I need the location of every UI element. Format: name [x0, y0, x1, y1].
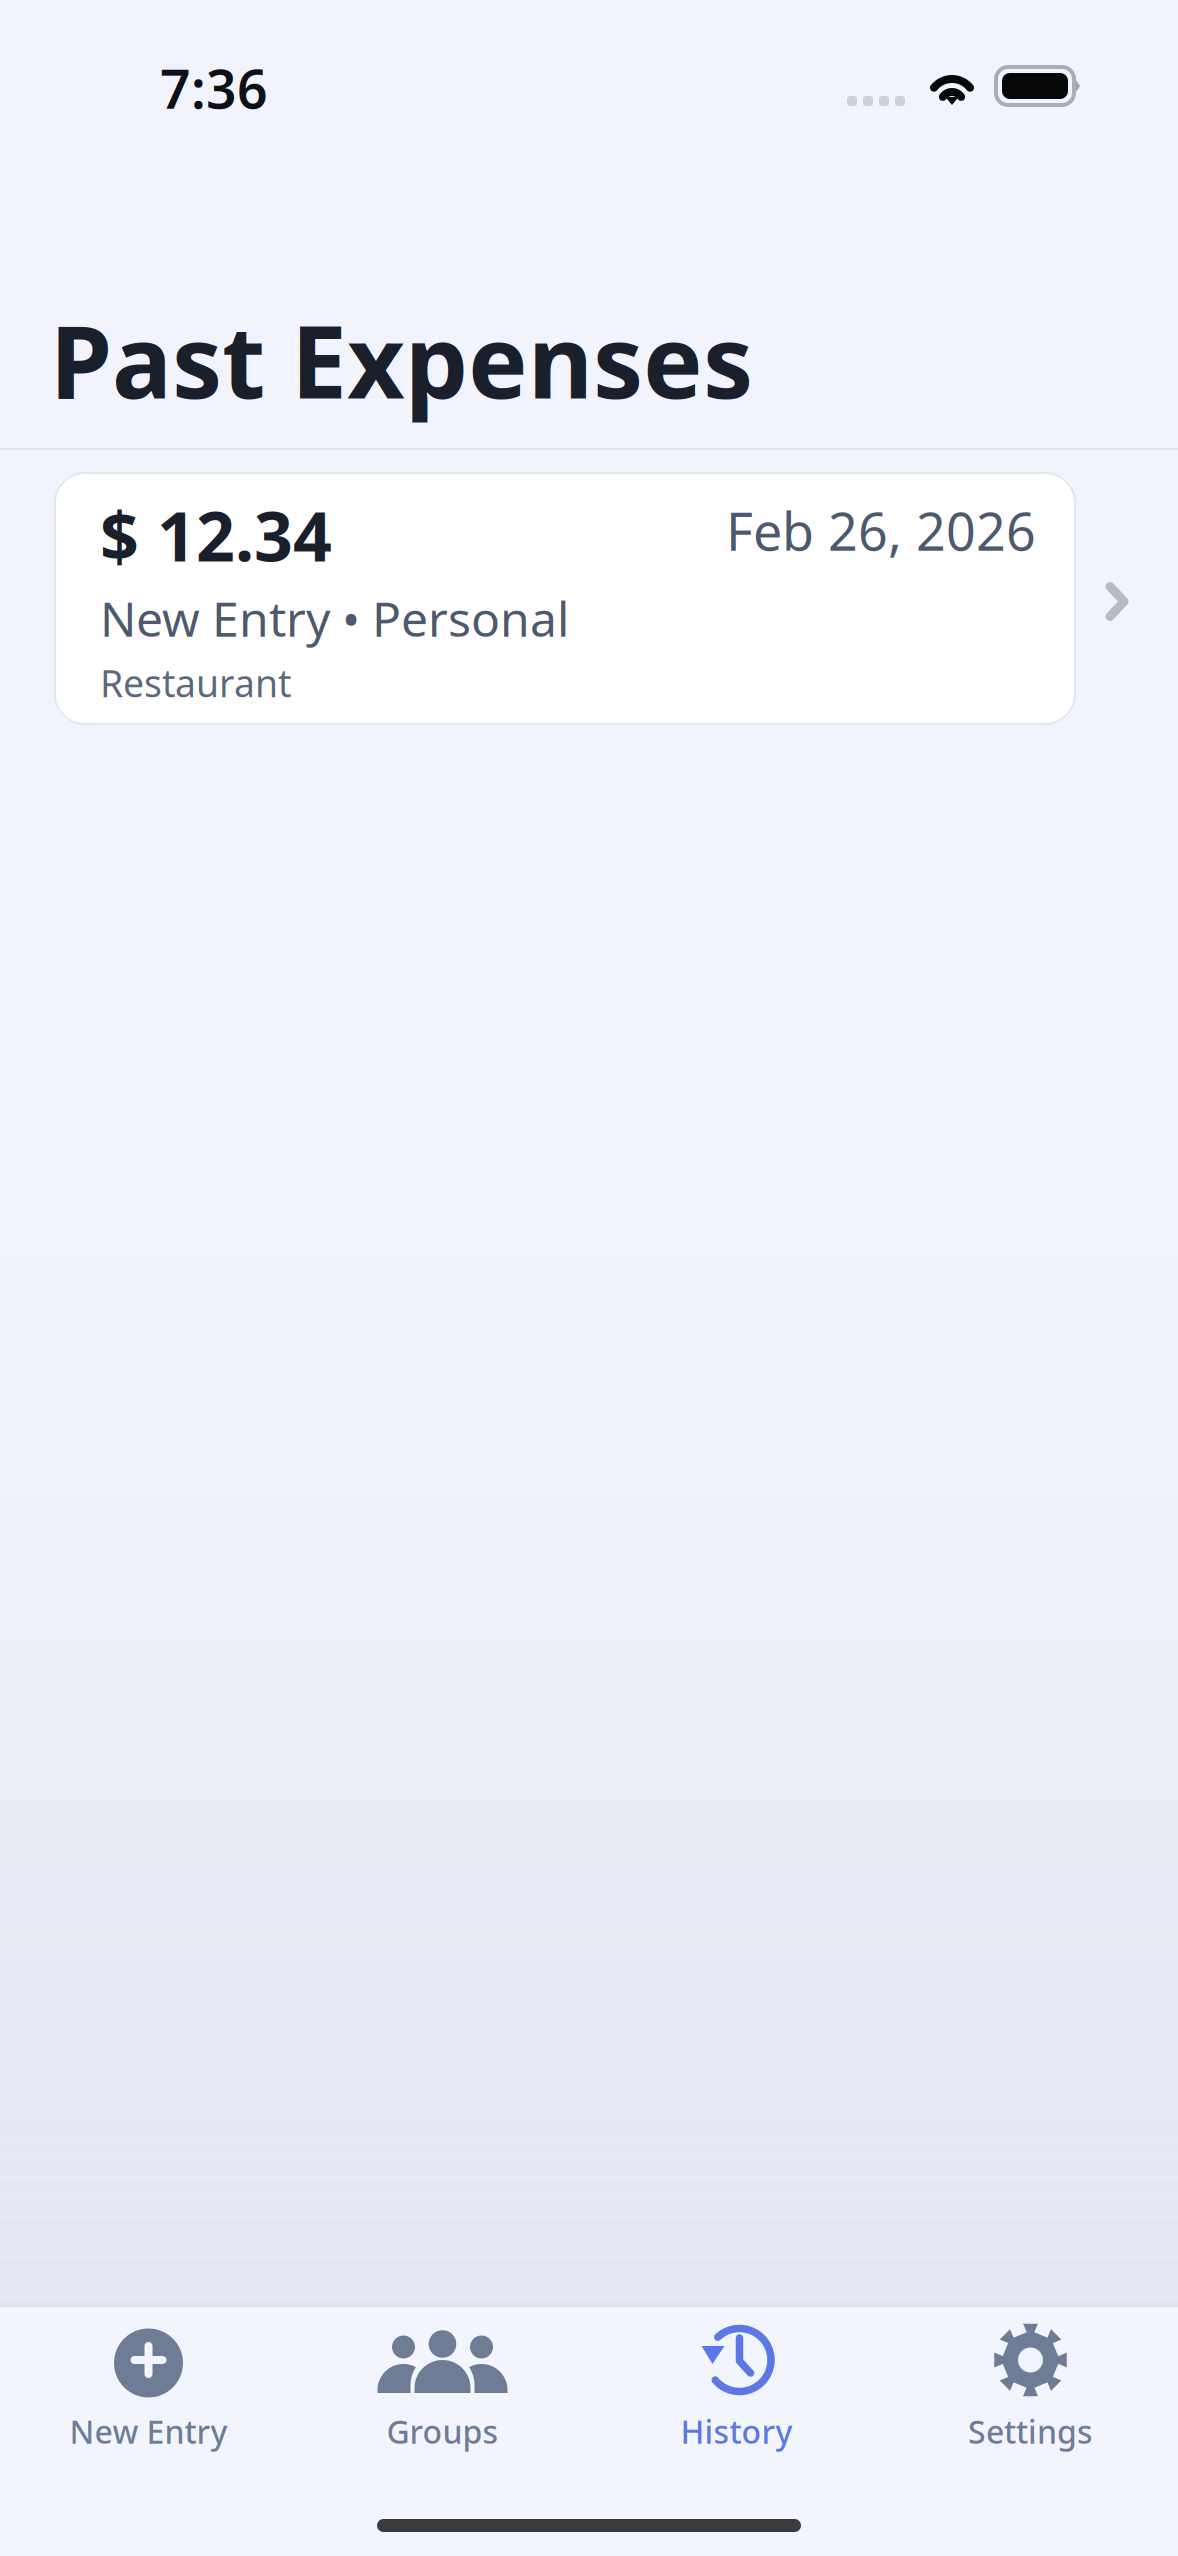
- button[interactable]: Groups: [295, 2320, 589, 2480]
- staticText: Settings: [968, 2410, 1093, 2452]
- staticText: Past Expenses: [50, 293, 753, 426]
- button[interactable]: New Entry: [1, 2320, 295, 2480]
- staticText: New Entry • Personal: [100, 586, 569, 650]
- button[interactable]: History: [589, 2320, 883, 2480]
- staticText: History: [680, 2410, 792, 2452]
- button[interactable]: Settings: [883, 2320, 1177, 2480]
- staticText: Feb 26, 2026: [726, 496, 1036, 565]
- staticText: Groups: [386, 2410, 498, 2452]
- staticText: Restaurant: [100, 658, 291, 708]
- button[interactable]: $ 12.34: [0, 450, 1178, 725]
- staticText: 7:36: [160, 53, 268, 123]
- staticText: New Entry: [69, 2410, 227, 2452]
- staticText: $ 12.34: [100, 490, 332, 580]
